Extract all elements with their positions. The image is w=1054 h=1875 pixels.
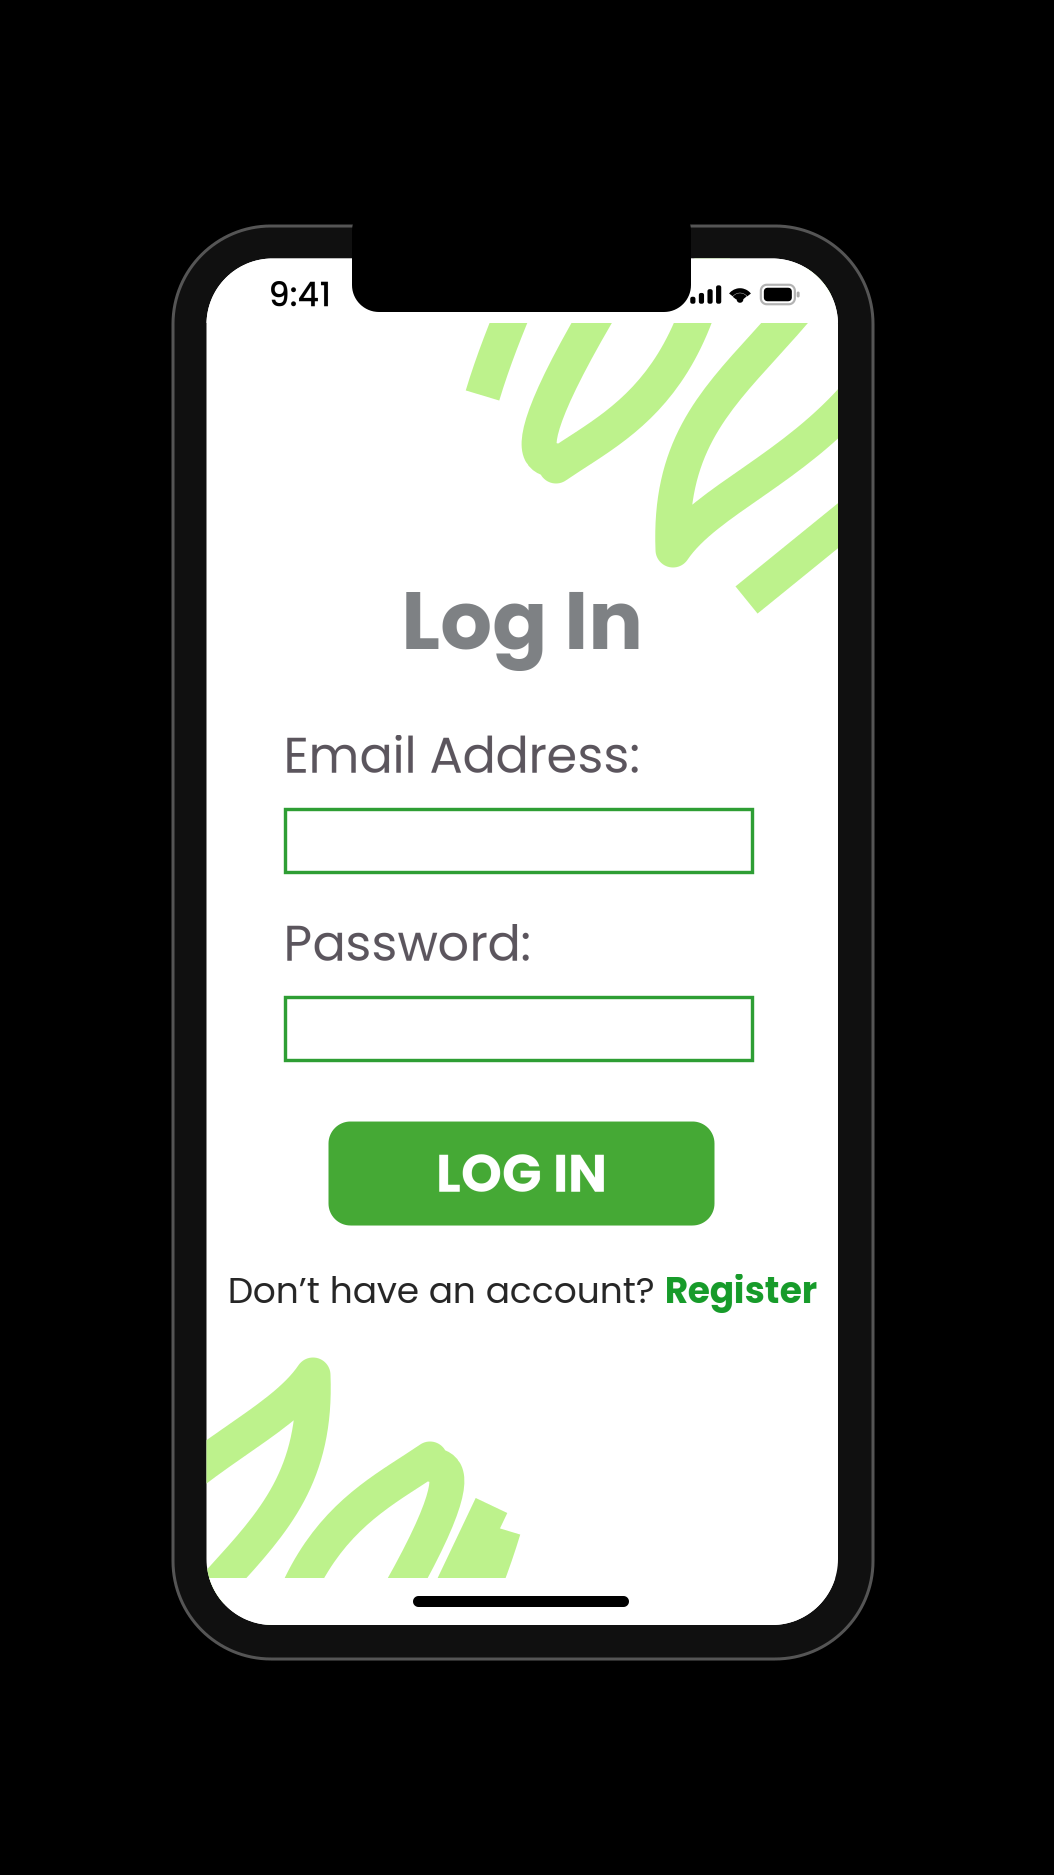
staticText: Log In [401,564,643,677]
staticText: Email Address: [283,721,640,790]
staticText: Password: [283,909,531,978]
button[interactable]: Don’t have an account? [206,1268,838,1312]
staticText: Register [665,1265,817,1316]
staticText: 9:41 [268,271,331,318]
button[interactable]: LOG IN [328,1121,714,1225]
staticText: LOG IN [436,1137,607,1210]
staticText: Don’t have an account? [228,1265,665,1316]
